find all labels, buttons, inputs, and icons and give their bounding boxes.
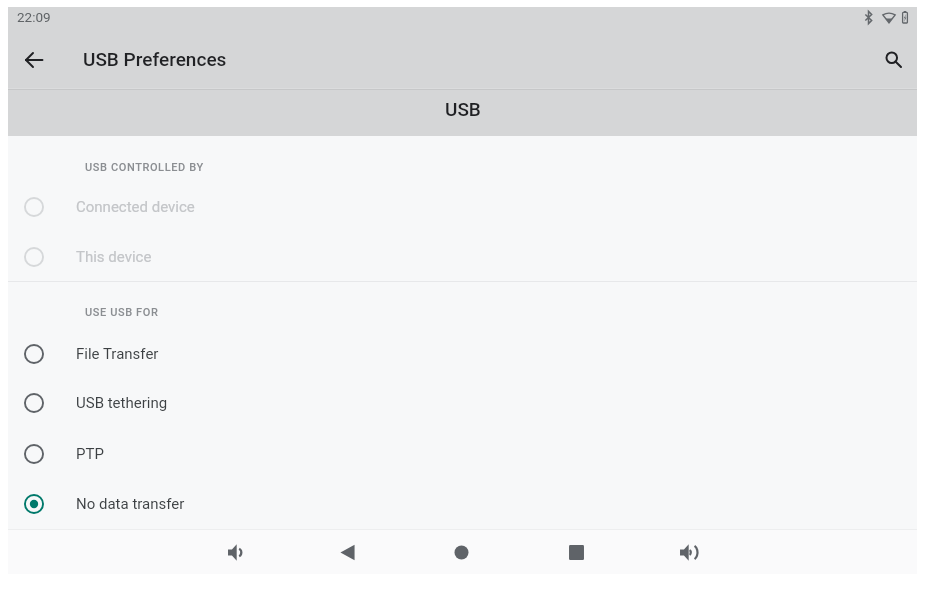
staticText: USB CONTROLLED BY — [85, 161, 204, 174]
staticText: File Transfer — [76, 345, 159, 363]
button[interactable]: USB tethering — [8, 378, 917, 428]
staticText: PTP — [76, 445, 104, 463]
staticText: USE USB FOR — [85, 306, 159, 319]
button[interactable]: Search — [873, 39, 915, 81]
staticText: USB — [445, 98, 481, 120]
button[interactable]: Volume down — [214, 531, 256, 573]
staticText: 22:09 — [17, 9, 51, 25]
button[interactable]: File Transfer — [8, 329, 917, 379]
button[interactable]: Recents — [555, 531, 597, 573]
button[interactable]: Volume up — [666, 531, 708, 573]
staticText: No data transfer — [76, 495, 185, 513]
staticText: This device — [76, 248, 152, 266]
staticText: Connected device — [76, 198, 195, 216]
button[interactable]: PTP — [8, 429, 917, 479]
button[interactable]: No data transfer — [8, 479, 917, 529]
button[interactable]: Back — [326, 531, 368, 573]
button[interactable]: Home — [440, 531, 482, 573]
button[interactable]: Connected device — [8, 182, 917, 232]
button[interactable]: This device — [8, 232, 917, 282]
button[interactable]: Back — [12, 38, 56, 82]
staticText: USB Preferences — [83, 48, 227, 70]
staticText: USB tethering — [76, 394, 168, 412]
